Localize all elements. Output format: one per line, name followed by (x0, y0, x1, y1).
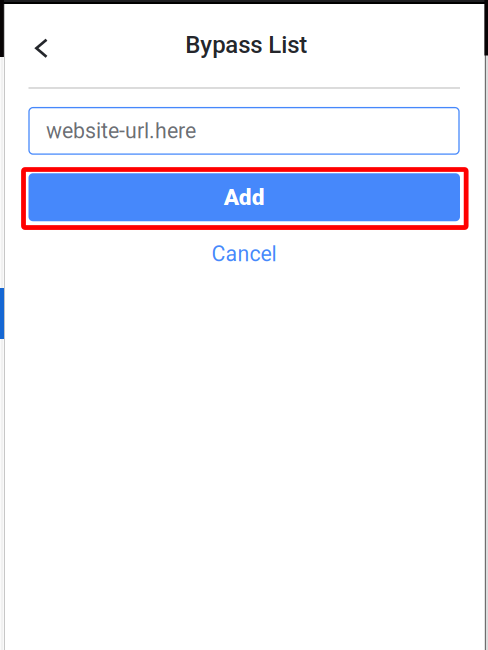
button[interactable]: website-url.here (29, 108, 459, 154)
button[interactable]: Back (19, 24, 63, 72)
button[interactable]: Cancel (0, 237, 488, 271)
button[interactable]: Add (28, 173, 460, 221)
staticText: Bypass List (185, 31, 307, 59)
staticText: website-url.here (46, 118, 196, 143)
staticText: Cancel (211, 242, 276, 267)
staticText: Add (224, 184, 265, 211)
